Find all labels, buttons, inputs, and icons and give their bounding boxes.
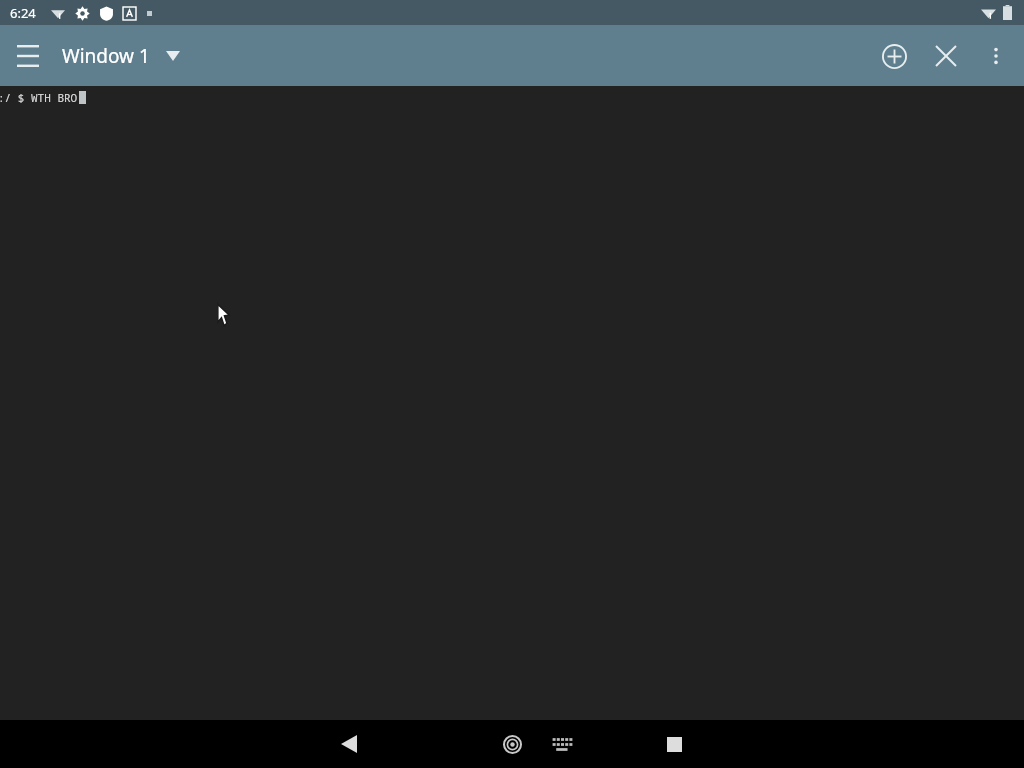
staticText: 6:24 — [10, 4, 36, 22]
button[interactable]: Close session — [920, 30, 972, 82]
button[interactable]: Back — [325, 720, 373, 768]
button[interactable]: More options — [972, 32, 1020, 80]
staticText: Window 1 — [62, 43, 150, 69]
button[interactable]: :/ $ WTH BRO — [0, 86, 1024, 720]
button[interactable]: Show keyboard — [538, 720, 586, 768]
button[interactable]: Window 1 — [56, 35, 186, 77]
button[interactable]: New session — [868, 30, 920, 82]
button[interactable]: Recent apps — [650, 720, 698, 768]
staticText: :/ $ WTH BRO — [0, 90, 78, 105]
button[interactable]: Home — [488, 720, 536, 768]
button[interactable]: Open navigation menu — [0, 28, 56, 84]
